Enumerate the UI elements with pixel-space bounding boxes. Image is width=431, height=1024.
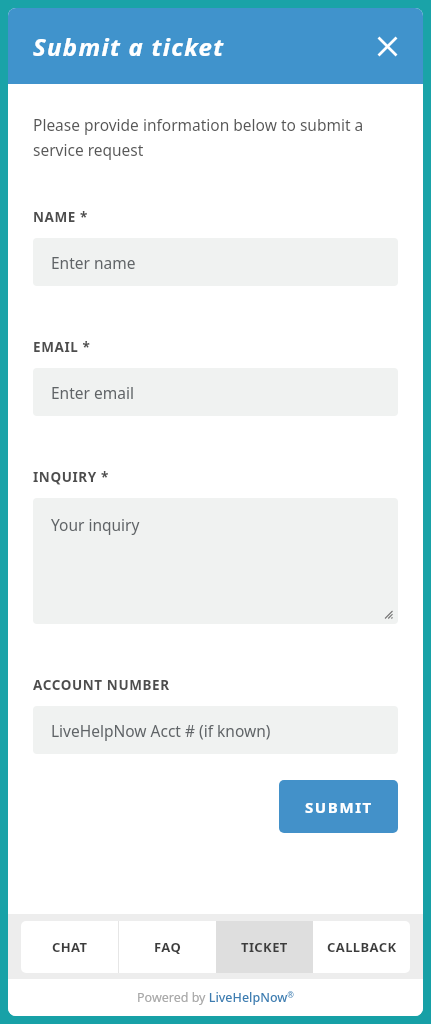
button[interactable]: Enter email <box>33 368 398 416</box>
staticText: FAQ <box>154 938 182 956</box>
staticText: Submit a ticket <box>33 30 225 63</box>
button[interactable]: Enter name <box>33 238 398 286</box>
staticText: CHAT <box>52 938 88 956</box>
staticText: SUBMIT <box>305 797 373 817</box>
button[interactable]: FAQ <box>119 921 216 973</box>
staticText: LiveHelpNow Acct # (if known) <box>51 720 271 741</box>
button[interactable]: Your inquiry <box>33 498 398 624</box>
staticText: Enter name <box>51 252 136 273</box>
staticText: EMAIL * <box>33 338 91 356</box>
staticText: NAME * <box>33 208 89 226</box>
button[interactable]: CALLBACK <box>313 921 410 973</box>
staticText: Enter email <box>51 382 134 403</box>
staticText: Please provide information below to subm… <box>33 114 364 161</box>
button[interactable]: TICKET <box>216 921 313 973</box>
staticText: TICKET <box>241 938 288 956</box>
staticText: CALLBACK <box>327 938 397 956</box>
staticText: Your inquiry <box>51 514 140 535</box>
button[interactable]: LiveHelpNow Acct # (if known) <box>33 706 398 754</box>
button[interactable]: Close <box>367 26 407 66</box>
staticText: ACCOUNT NUMBER <box>33 676 170 694</box>
button[interactable]: SUBMIT <box>279 780 398 833</box>
button[interactable]: CHAT <box>21 921 118 973</box>
button[interactable]: Powered by LiveHelpNow® <box>137 989 295 1006</box>
staticText: INQUIRY * <box>33 468 109 486</box>
